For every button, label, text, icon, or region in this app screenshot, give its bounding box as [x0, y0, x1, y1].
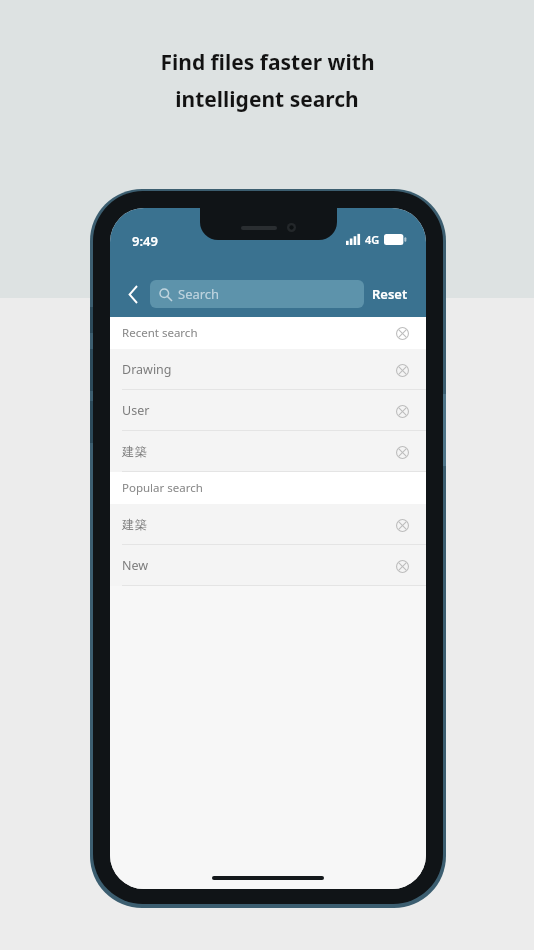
button[interactable]: Clear: [392, 323, 412, 343]
button[interactable]: Drawing: [110, 349, 426, 390]
button[interactable]: Reset: [364, 279, 416, 309]
button[interactable]: 建築: [110, 504, 426, 545]
staticText: Search: [178, 285, 220, 303]
button[interactable]: Clear: [392, 442, 412, 462]
button[interactable]: New: [110, 545, 426, 586]
staticText: intelligent search: [175, 85, 359, 114]
staticText: 9:49: [132, 232, 158, 250]
button[interactable]: 建築: [110, 431, 426, 472]
staticText: Popular search: [122, 480, 203, 496]
button[interactable]: User: [110, 390, 426, 431]
button[interactable]: Back: [120, 281, 146, 307]
button[interactable]: Clear: [392, 360, 412, 380]
button[interactable]: Clear: [392, 556, 412, 576]
button[interactable]: Clear: [392, 515, 412, 535]
staticText: User: [122, 402, 150, 419]
button[interactable]: Popular search: [110, 472, 426, 504]
staticText: Find files faster with: [160, 48, 375, 77]
staticText: New: [122, 557, 149, 574]
staticText: 建築: [122, 444, 147, 460]
staticText: 建築: [122, 517, 147, 533]
staticText: Recent search: [122, 325, 198, 341]
button[interactable]: Clear: [392, 401, 412, 421]
staticText: Reset: [372, 285, 408, 303]
staticText: 4G: [365, 232, 380, 247]
button[interactable]: Recent search: [110, 317, 426, 349]
button[interactable]: Search: [150, 280, 364, 308]
staticText: Drawing: [122, 361, 172, 378]
